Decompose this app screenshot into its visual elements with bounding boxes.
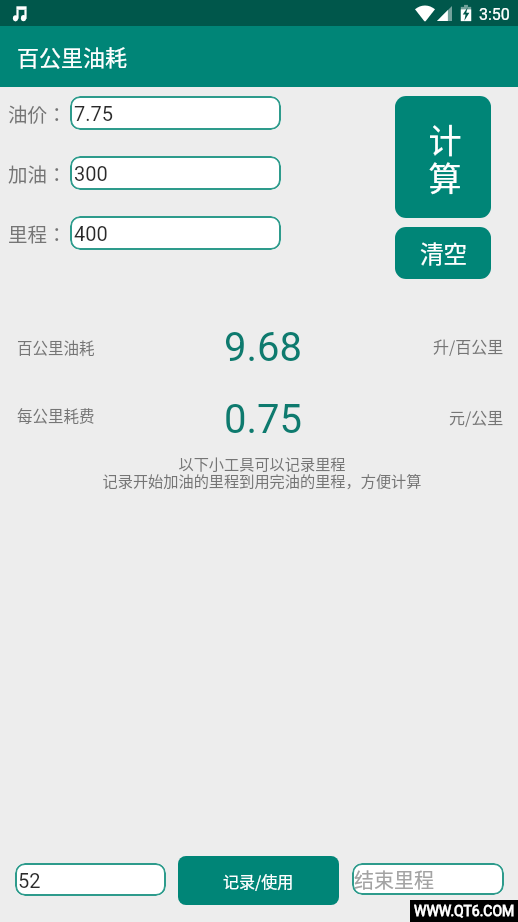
button[interactable]: 7.75 — [70, 96, 281, 130]
button[interactable]: 记录/使用 — [178, 856, 339, 905]
other: Signal strength — [436, 6, 453, 21]
button[interactable]: 清空 — [395, 227, 491, 279]
button[interactable]: 52 — [15, 863, 166, 896]
other: Battery charging — [459, 4, 473, 22]
staticText: 52 — [18, 869, 41, 892]
staticText: 7.75 — [74, 102, 113, 125]
staticText: 里程： — [8, 219, 67, 247]
staticText: 0.75 — [224, 396, 302, 443]
staticText: 百公里油耗 — [17, 336, 95, 358]
staticText: 油价： — [8, 99, 67, 127]
button[interactable]: 结束里程 — [352, 863, 504, 895]
staticText: 300 — [74, 162, 108, 185]
staticText: 升/百公里 — [433, 334, 504, 357]
staticText: 3:50 — [479, 5, 510, 24]
staticText: 以下小工具可以记录里程 记录开始加油的里程到用完油的里程，方便计算 — [3, 452, 518, 492]
button[interactable]: 计 算 — [395, 96, 491, 218]
staticText: 元/公里 — [449, 405, 504, 428]
staticText: 清空 — [420, 236, 467, 270]
staticText: 加油： — [8, 159, 67, 187]
button[interactable]: 400 — [70, 216, 281, 250]
other: Wi-Fi — [415, 6, 435, 21]
button[interactable]: 300 — [70, 156, 281, 190]
staticText: 记录/使用 — [223, 869, 294, 892]
staticText: WWW.QT6.COM — [414, 903, 515, 919]
staticText: 计 算 — [425, 115, 465, 200]
staticText: 结束里程 — [354, 865, 434, 894]
staticText: 9.68 — [224, 324, 302, 371]
staticText: 每公里耗费 — [17, 404, 95, 426]
staticText: 400 — [74, 222, 108, 245]
staticText: 百公里油耗 — [17, 40, 128, 72]
other: Music playing — [13, 6, 27, 22]
